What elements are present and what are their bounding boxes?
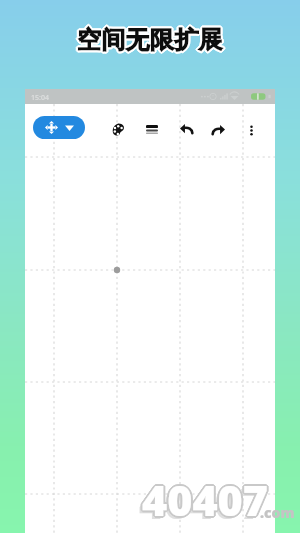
staticText: 40407 xyxy=(141,469,267,528)
button[interactable]: Undo xyxy=(173,117,199,141)
staticText: 40407 xyxy=(143,469,269,528)
staticText: 40407 xyxy=(141,469,267,528)
staticText: 空间无限扩展 xyxy=(77,23,223,53)
staticText: 空间无限扩展 xyxy=(76,26,222,56)
staticText: 空间无限扩展 xyxy=(75,25,221,55)
staticText: 40407 xyxy=(141,471,267,530)
staticText: 空间无限扩展 xyxy=(77,25,223,55)
button[interactable]: Move tool xyxy=(33,116,85,139)
button[interactable]: Stroke width xyxy=(139,117,165,141)
staticText: 空间无限扩展 xyxy=(78,24,224,54)
staticText: 40407 xyxy=(142,468,268,527)
staticText: 40407 xyxy=(144,470,270,529)
staticText: 空间无限扩展 xyxy=(78,24,224,54)
staticText: 40407 xyxy=(143,469,269,528)
staticText: 40407 xyxy=(141,471,267,530)
staticText: 空间无限扩展 xyxy=(78,26,224,56)
staticText: 40407 xyxy=(139,473,265,532)
staticText: 40407 xyxy=(142,470,268,529)
staticText: 空间无限扩展 xyxy=(76,24,222,54)
staticText: 15:04 xyxy=(31,93,49,103)
staticText: 空间无限扩展 xyxy=(79,25,225,55)
staticText: 空间无限扩展 xyxy=(76,26,222,56)
staticText: 空间无限扩展 xyxy=(76,24,222,54)
button[interactable]: More options xyxy=(238,118,264,142)
button[interactable]: Redo xyxy=(205,118,231,142)
staticText: .com xyxy=(260,503,295,522)
button[interactable]: Color palette xyxy=(105,117,131,141)
staticText: 40407 xyxy=(142,472,268,531)
staticText: 空间无限扩展 xyxy=(77,27,223,57)
staticText: 空间无限扩展 xyxy=(78,26,224,56)
staticText: 40407 xyxy=(143,471,269,530)
staticText: 40407 xyxy=(143,471,269,530)
staticText: 40407 xyxy=(140,470,266,529)
